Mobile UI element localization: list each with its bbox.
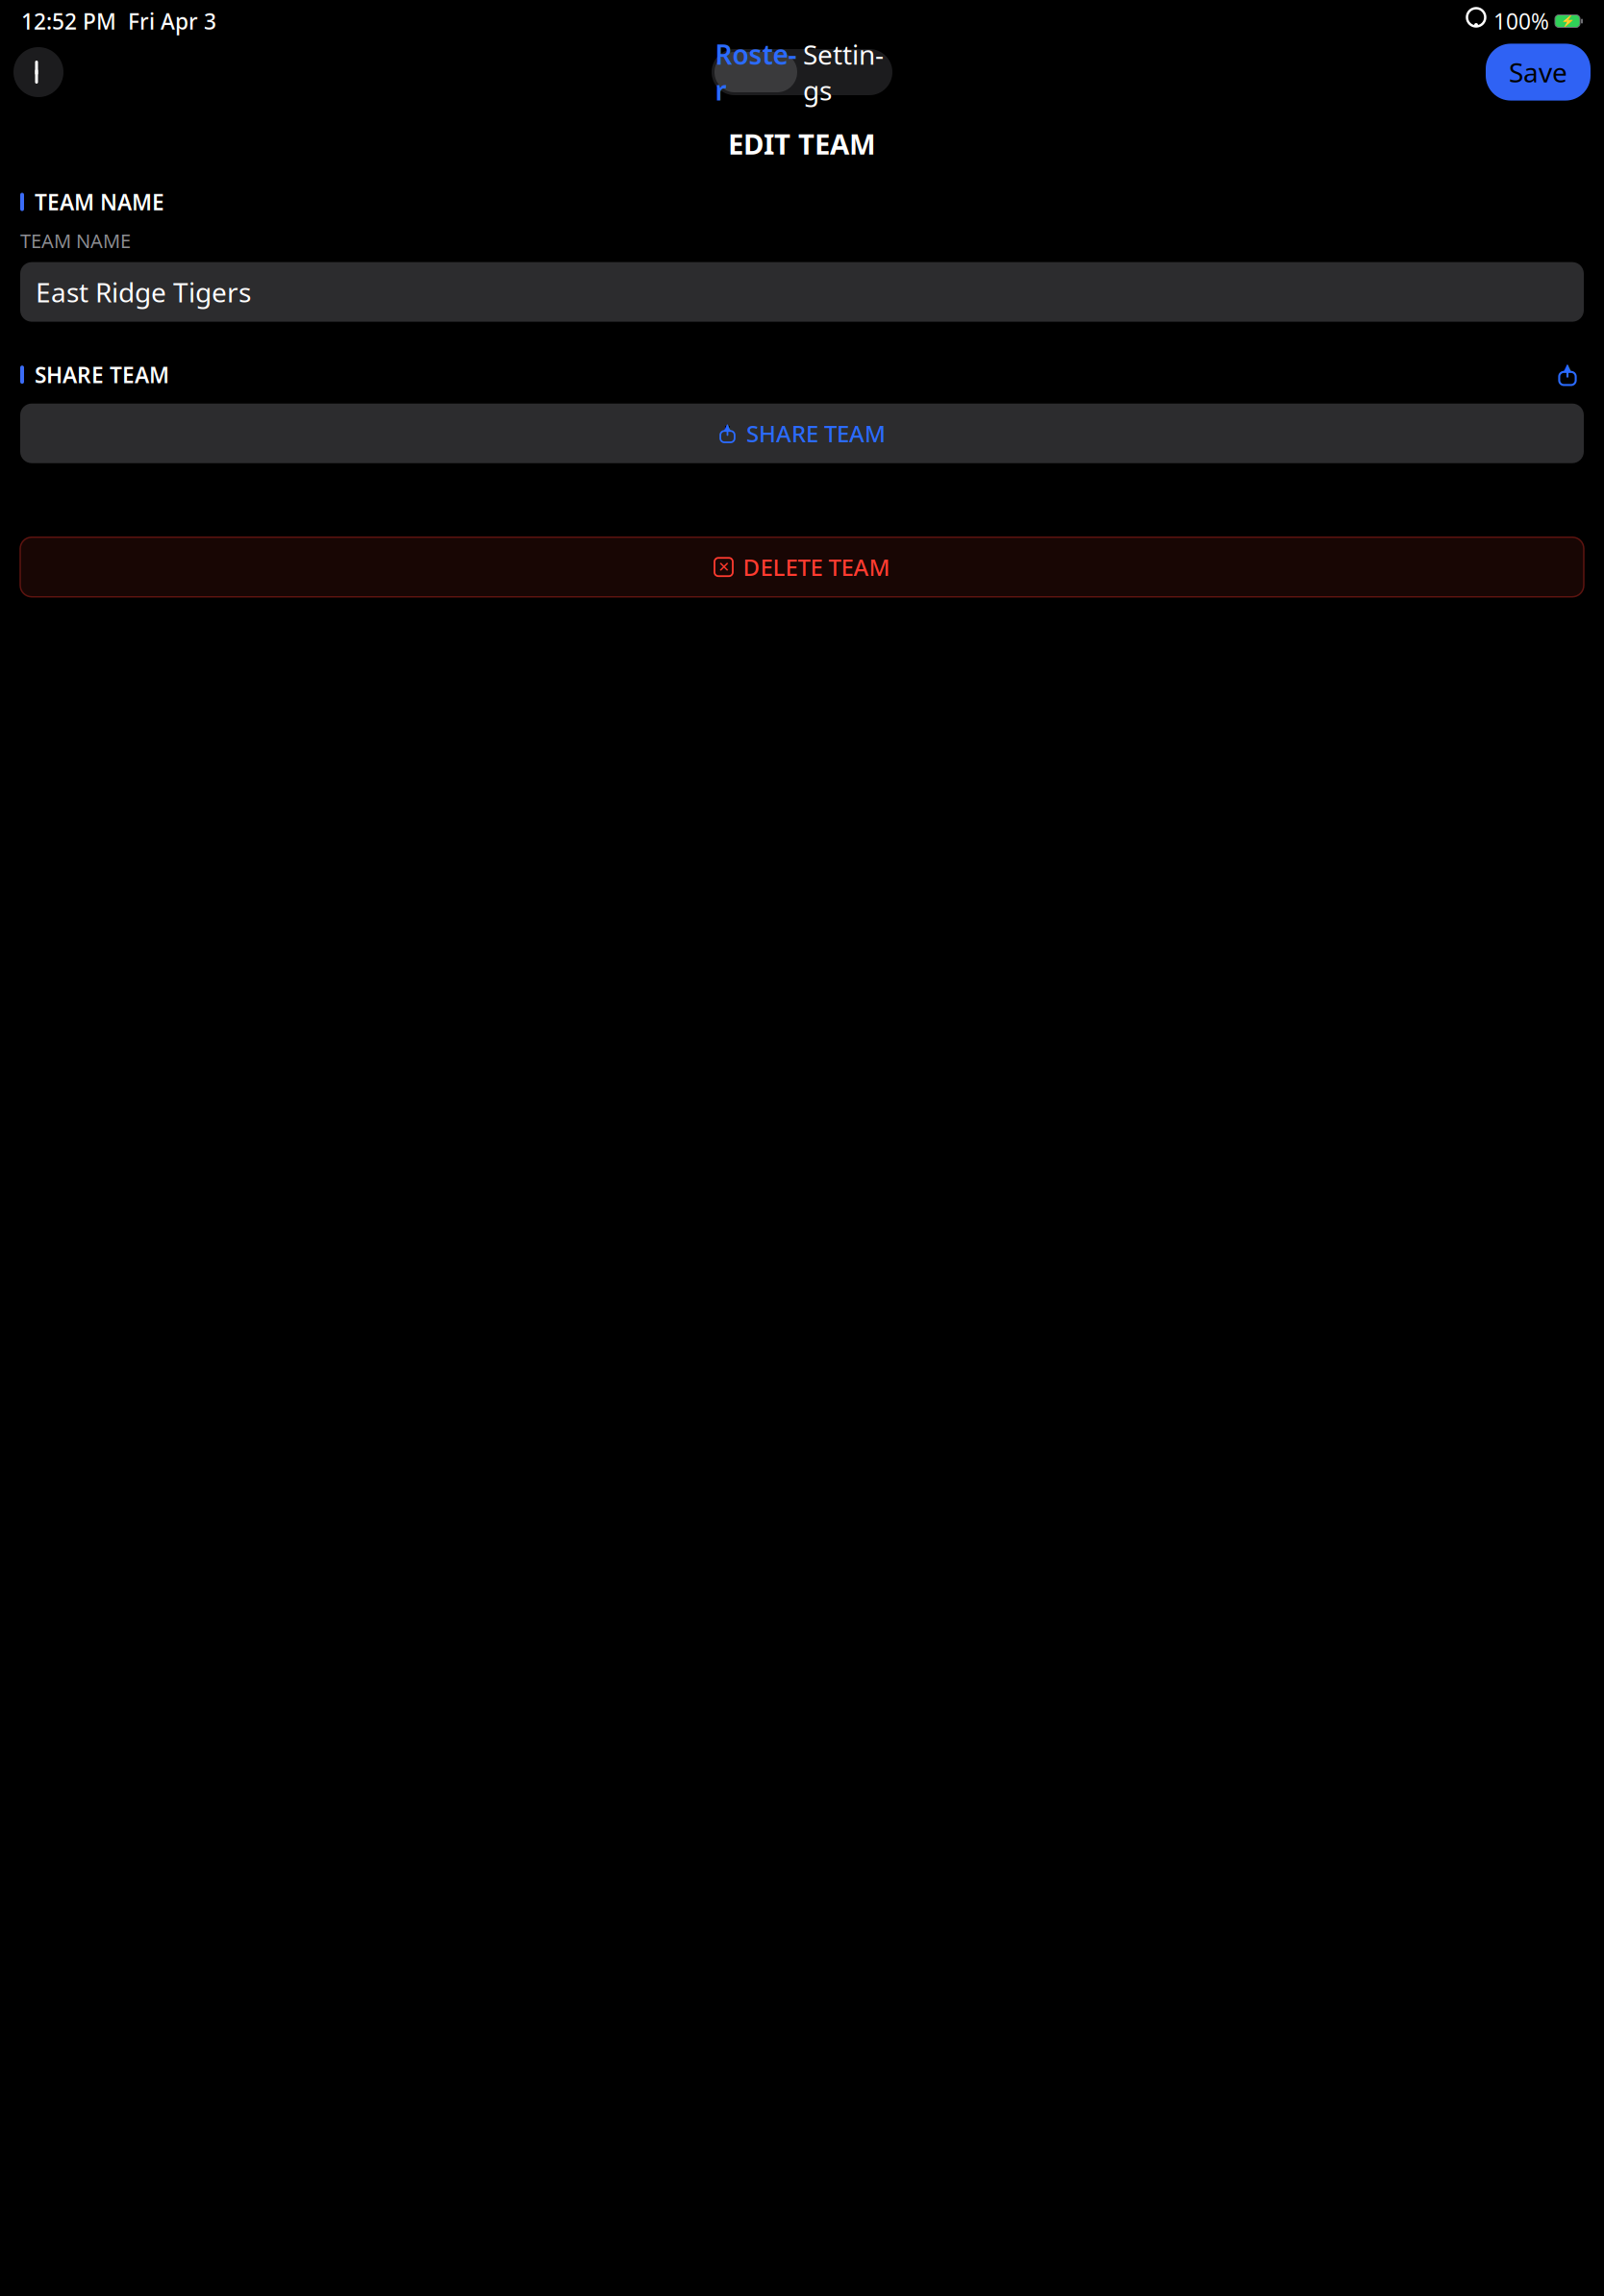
button[interactable]: Save <box>1486 44 1591 101</box>
staticText: Save <box>1509 54 1567 90</box>
button[interactable]: ✕ <box>20 537 1584 597</box>
staticText: Settings <box>803 36 884 108</box>
staticText: ▲ <box>724 422 731 432</box>
staticText: TEAM NAME <box>20 228 131 254</box>
staticText: 100% <box>1493 7 1549 36</box>
staticText: ✕ <box>718 559 729 575</box>
button[interactable]: Settings <box>797 52 890 92</box>
staticText: ⚡ <box>1560 15 1575 28</box>
staticText: DELETE TEAM <box>743 552 890 582</box>
button[interactable]: Back <box>13 47 63 97</box>
button[interactable]: ▲ <box>20 404 1584 463</box>
staticText: EDIT TEAM <box>728 125 876 162</box>
staticText: SHARE TEAM <box>746 418 886 449</box>
staticText: Fri Apr 3 <box>116 7 216 36</box>
staticText: SHARE TEAM <box>35 360 169 389</box>
button[interactable]: Roster <box>714 52 797 92</box>
staticText: TEAM NAME <box>35 187 164 216</box>
staticText: ▲ <box>1564 361 1571 373</box>
staticText: East Ridge Tigers <box>36 274 251 310</box>
staticText: 12:52 PM <box>21 7 116 36</box>
button[interactable]: Share <box>1551 360 1584 389</box>
staticText: Roster <box>715 36 797 108</box>
button[interactable]: East Ridge Tigers <box>20 262 1584 322</box>
